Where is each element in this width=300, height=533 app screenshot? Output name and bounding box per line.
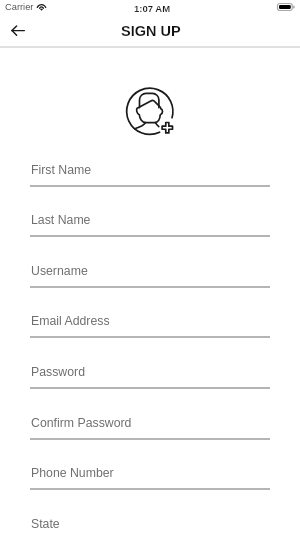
button[interactable]: Phone Number [0, 454, 300, 500]
staticText: SIGN UP [121, 23, 181, 39]
staticText: Phone Number [31, 466, 114, 480]
staticText: Username [31, 264, 88, 278]
button[interactable]: State [0, 505, 300, 533]
staticText: Last Name [31, 213, 91, 227]
button[interactable]: Username [0, 252, 300, 298]
staticText: 1:07 AM [134, 3, 171, 14]
staticText: State [31, 517, 60, 531]
button[interactable]: Email Address [0, 302, 300, 348]
button[interactable]: Confirm Password [0, 404, 300, 450]
staticText: Email Address [31, 314, 110, 328]
staticText: Password [31, 365, 85, 379]
staticText: Confirm Password [31, 416, 132, 430]
button[interactable]: Password [0, 353, 300, 399]
button[interactable]: Last Name [0, 201, 300, 247]
staticText: First Name [31, 163, 92, 177]
button[interactable]: First Name [0, 151, 300, 197]
button[interactable]: Back [2, 18, 36, 46]
staticText: Carrier [5, 2, 34, 12]
